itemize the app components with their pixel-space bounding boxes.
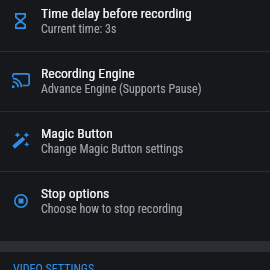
staticText: Time delay before recording: [41, 5, 192, 21]
staticText: Change Magic Button settings: [41, 142, 184, 156]
other: Recording engine: [12, 73, 30, 88]
button[interactable]: Magic button: [0, 112, 270, 171]
staticText: Stop options: [41, 185, 110, 201]
staticText: Current time: 3s: [41, 22, 117, 36]
staticText: Recording Engine: [41, 65, 135, 81]
other: Stop options: [14, 194, 28, 208]
staticText: Choose how to stop recording: [41, 202, 183, 216]
staticText: VIDEO SETTINGS: [13, 262, 95, 270]
staticText: Magic Button: [41, 125, 113, 141]
button[interactable]: Recording engine: [0, 52, 270, 111]
other: Magic button: [12, 132, 29, 149]
other: Time delay: [15, 13, 26, 29]
button[interactable]: Stop options: [0, 172, 270, 231]
button[interactable]: Time delay: [0, 0, 270, 51]
staticText: Advance Engine (Supports Pause): [41, 82, 202, 96]
